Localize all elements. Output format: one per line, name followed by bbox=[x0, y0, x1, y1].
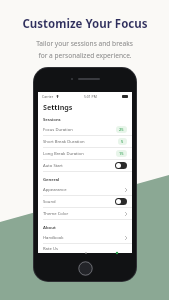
staticText: Theme Color bbox=[43, 211, 69, 217]
button[interactable]: Auto Start bbox=[115, 162, 127, 169]
staticText: Settings bbox=[43, 102, 73, 112]
staticText: Tailor your sessions and breaks bbox=[36, 39, 133, 48]
button[interactable]: Auto Start bbox=[38, 160, 132, 171]
button[interactable]: Long Break Duration bbox=[38, 148, 132, 159]
staticText: 15 bbox=[119, 151, 124, 156]
button[interactable]: Appearance bbox=[38, 184, 132, 195]
staticText: 25 bbox=[119, 127, 124, 132]
button[interactable]: Handbook bbox=[38, 232, 132, 243]
staticText: Long Break Duration bbox=[43, 151, 84, 157]
staticText: 5:01 PM bbox=[84, 94, 97, 99]
button[interactable]: Short Break Duration bbox=[38, 136, 132, 147]
button[interactable]: Focus Duration bbox=[38, 124, 132, 135]
button[interactable]: Theme Color bbox=[38, 208, 132, 219]
button[interactable]: Sound bbox=[115, 198, 127, 205]
staticText: General bbox=[43, 177, 60, 183]
staticText: About bbox=[43, 225, 56, 231]
staticText: for a personalized experience. bbox=[38, 51, 132, 60]
staticText: Customize Your Focus bbox=[22, 16, 148, 32]
staticText: Rate Us bbox=[43, 246, 58, 252]
staticText: Sessions bbox=[43, 117, 61, 123]
staticText: Sound bbox=[43, 199, 56, 205]
staticText: Carrier bbox=[42, 94, 54, 99]
staticText: Appearance bbox=[43, 187, 67, 193]
button[interactable]: Rate Us bbox=[38, 244, 132, 253]
staticText: Focus Duration bbox=[43, 127, 73, 133]
staticText: Handbook bbox=[43, 235, 64, 241]
button[interactable]: Sound bbox=[38, 196, 132, 207]
staticText: Auto Start bbox=[43, 163, 63, 169]
staticText: Short Break Duration bbox=[43, 139, 85, 145]
staticText: 5 bbox=[121, 139, 124, 144]
